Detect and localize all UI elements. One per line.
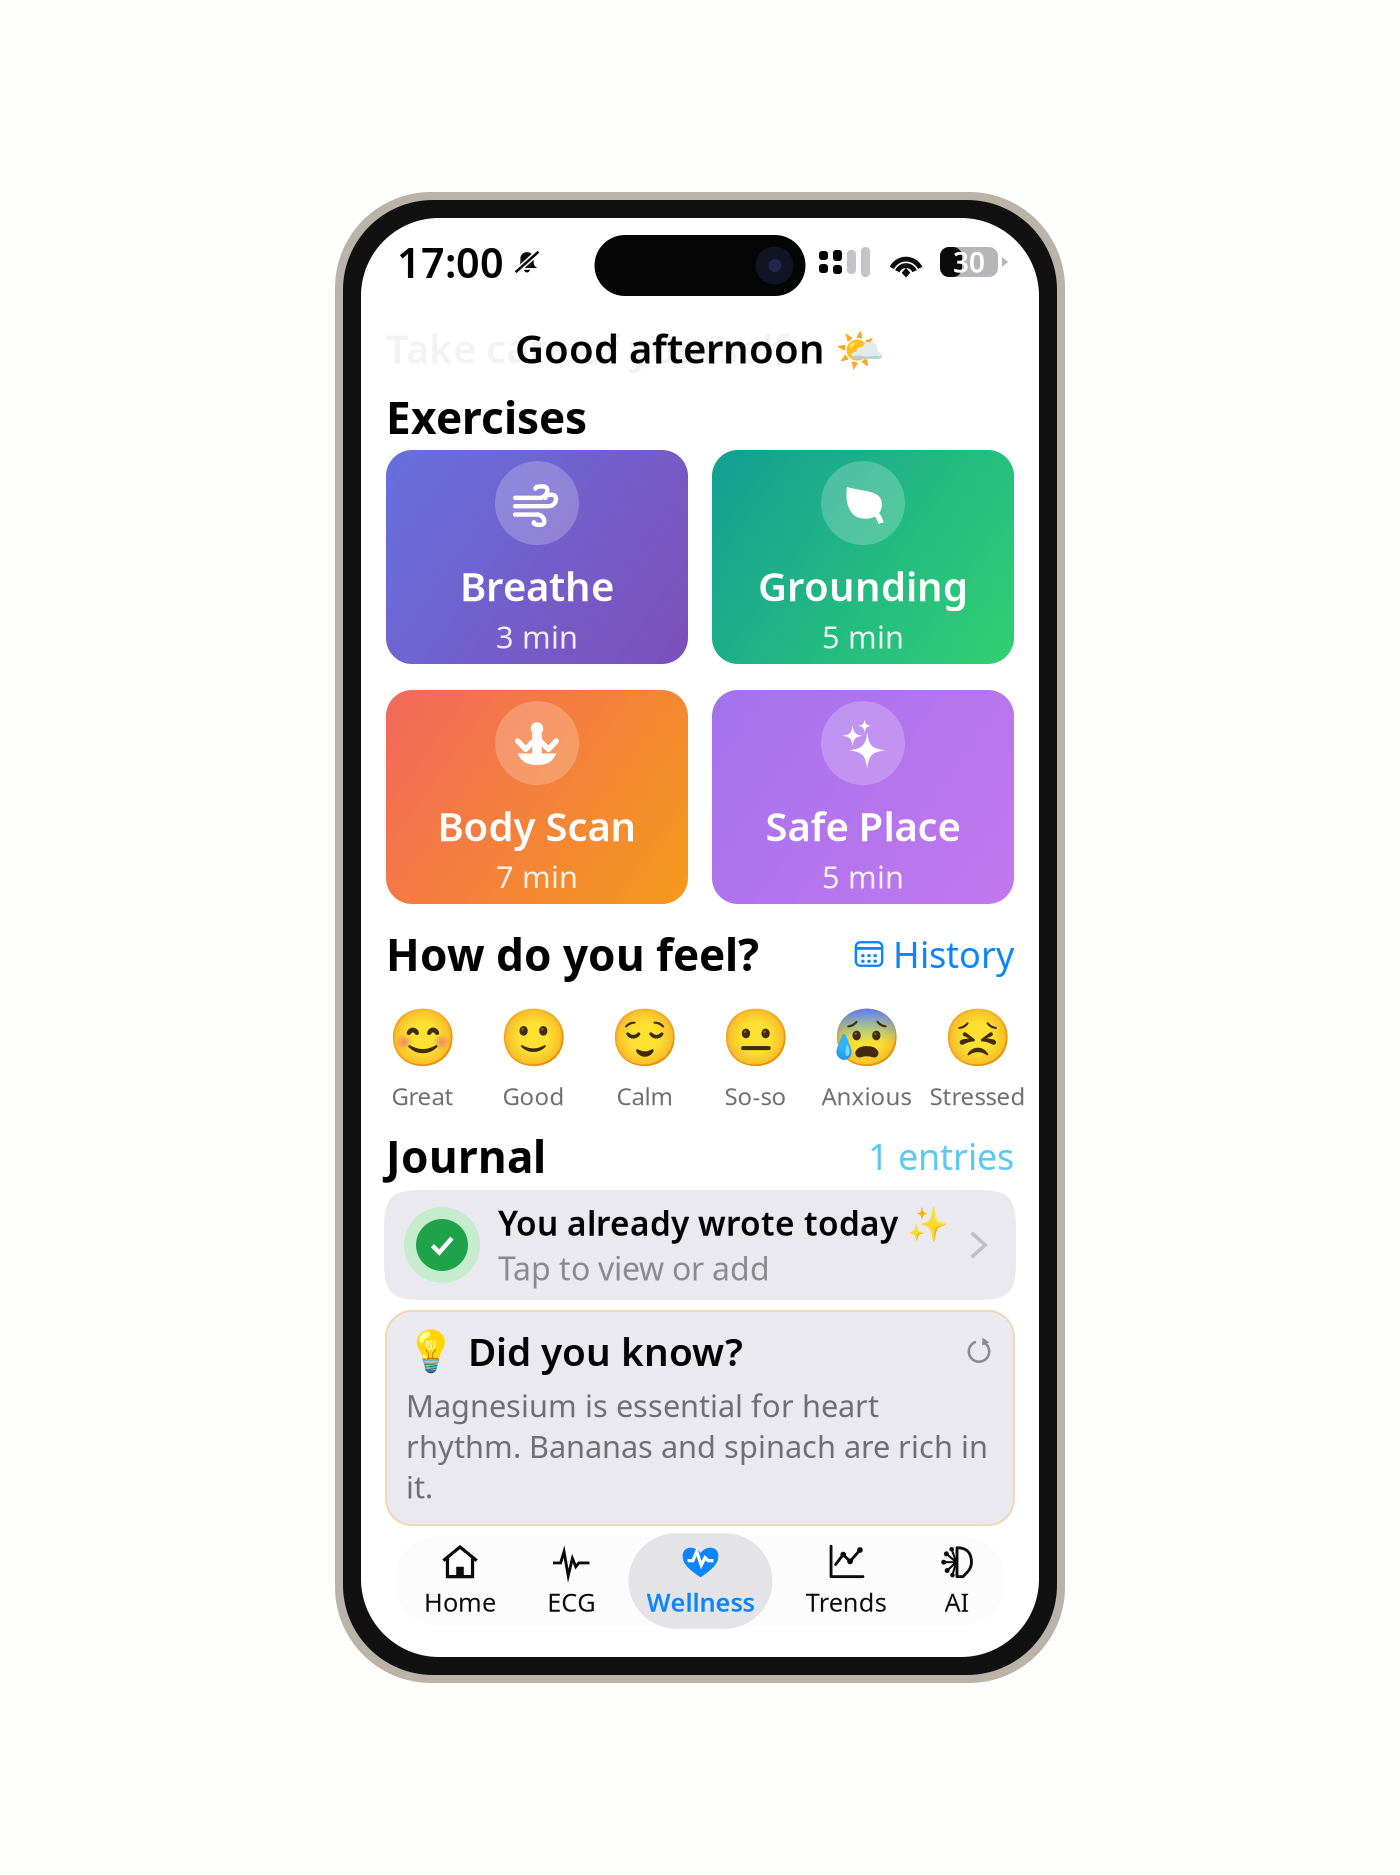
staticText: 😐	[720, 1006, 790, 1070]
staticText: How do you feel?	[386, 925, 759, 983]
staticText: Great	[391, 1080, 453, 1112]
staticText: Calm	[616, 1080, 672, 1112]
staticText: 😌	[609, 1006, 679, 1070]
staticText: Exercises	[386, 388, 587, 446]
button[interactable]: 😰	[811, 1006, 922, 1112]
button[interactable]: Breathe	[386, 450, 688, 664]
button[interactable]: 🙂	[478, 1006, 589, 1112]
staticText: 5 min	[822, 856, 904, 897]
staticText: Home	[424, 1585, 496, 1619]
staticText: Safe Place	[765, 799, 960, 852]
staticText: You already wrote today ✨	[498, 1201, 949, 1245]
staticText: 😊	[387, 1006, 457, 1070]
button[interactable]: Grounding	[712, 450, 1014, 664]
staticText: Stressed	[929, 1080, 1025, 1112]
button[interactable]: Trends	[788, 1533, 905, 1629]
staticText: Take care of yourself	[386, 321, 788, 374]
staticText: Tap to view or add	[498, 1247, 770, 1289]
staticText: Trends	[806, 1585, 887, 1619]
staticText: 😰	[831, 1006, 901, 1070]
staticText: Grounding	[758, 559, 968, 612]
button[interactable]: 😣	[922, 1006, 1033, 1112]
button[interactable]: Safe Place	[712, 690, 1014, 904]
button[interactable]: ECG	[529, 1533, 613, 1629]
button[interactable]: Refresh tip	[964, 1336, 994, 1366]
staticText: Did you know?	[468, 1325, 743, 1376]
staticText: 🙂	[498, 1006, 568, 1070]
staticText: ECG	[547, 1585, 595, 1619]
button[interactable]: You already wrote today ✨	[384, 1190, 1016, 1300]
button[interactable]: Home	[406, 1533, 514, 1629]
staticText: History	[893, 930, 1014, 978]
staticText: AI	[944, 1585, 969, 1619]
button[interactable]: Body Scan	[386, 690, 688, 904]
button[interactable]: 😊	[367, 1006, 478, 1112]
button[interactable]: Wellness	[628, 1533, 772, 1629]
staticText: 30	[953, 243, 985, 281]
button[interactable]: 😌	[589, 1006, 700, 1112]
staticText: 7 min	[496, 856, 578, 897]
staticText: 5 min	[822, 616, 904, 657]
staticText: Magnesium is essential for heart rhythm.…	[406, 1385, 988, 1507]
button[interactable]: AI	[920, 1533, 994, 1629]
staticText: 😣	[942, 1006, 1012, 1070]
button[interactable]: History	[855, 930, 1014, 978]
staticText: Good afternoon 🌤️	[515, 321, 885, 374]
staticText: Journal	[386, 1127, 546, 1185]
staticText: Anxious	[821, 1080, 911, 1112]
staticText: Wellness	[646, 1585, 754, 1619]
staticText: Body Scan	[437, 799, 636, 852]
staticText: 1 entries	[868, 1132, 1014, 1180]
staticText: Good	[502, 1080, 564, 1112]
staticText: So-so	[724, 1080, 786, 1112]
button[interactable]: 😐	[700, 1006, 811, 1112]
staticText: 3 min	[496, 616, 578, 657]
staticText: 💡	[406, 1328, 456, 1374]
staticText: Breathe	[460, 559, 614, 612]
staticText: 17:00	[397, 235, 504, 289]
